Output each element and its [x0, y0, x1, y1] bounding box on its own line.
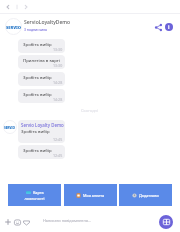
staticText: Моя анкета: [83, 193, 105, 198]
button[interactable]: Зробіть вибір: [18, 145, 65, 159]
button[interactable]: Servio Loyalty Demo: [18, 120, 65, 143]
staticText: i: [168, 24, 170, 31]
staticText: 13:30: [53, 47, 63, 52]
button[interactable]: Моя анкета: [64, 184, 117, 206]
button[interactable]: Карта: [8, 184, 61, 206]
staticText: SERVIO: [4, 126, 16, 130]
staticText: Додатково: [139, 193, 159, 198]
staticText: SERVIO: [6, 25, 22, 31]
button[interactable]: Додатково: [119, 184, 172, 206]
staticText: 12:45: [53, 137, 63, 142]
staticText: Зробіть вибір: [23, 74, 52, 80]
staticText: 13:30: [53, 63, 63, 68]
staticText: 14:28: [53, 80, 63, 85]
button[interactable]: Share: [152, 21, 164, 33]
button[interactable]: Info: [163, 21, 175, 33]
staticText: Зробіть вибір: [23, 91, 52, 97]
staticText: Servio Loyalty Demo: [21, 122, 64, 128]
button[interactable]: Зробіть вибір: [18, 89, 65, 103]
staticText: 14:28: [53, 97, 63, 102]
staticText: Зробіть вибір: [21, 128, 50, 134]
staticText: 12:45: [53, 153, 63, 158]
staticText: Зробіть вибір: [23, 41, 52, 47]
button[interactable]: Зробіть вибір: [18, 39, 65, 53]
button[interactable]: Прилетіла в карті: [18, 55, 65, 69]
button[interactable]: Attach: [3, 217, 13, 227]
button[interactable]: Apps: [159, 215, 173, 229]
staticText: Написати повідомлення...: [43, 218, 92, 223]
staticText: Сьогодні: [81, 108, 99, 113]
button[interactable]: Back: [3, 2, 12, 11]
staticText: Карта: [33, 190, 44, 195]
staticText: ServioLoyaltyDemo: [24, 19, 71, 26]
button[interactable]: Зробіть вибір: [18, 72, 65, 86]
staticText: 3 подписчика: [24, 27, 47, 32]
staticText: Прилетіла в карті: [23, 57, 61, 63]
button[interactable]: Sticker: [21, 217, 31, 227]
staticText: Зробіть вибір: [23, 147, 52, 153]
staticText: лояльності: [24, 196, 45, 201]
button[interactable]: Emoji: [12, 217, 22, 227]
button[interactable]: Forward: [21, 2, 30, 11]
